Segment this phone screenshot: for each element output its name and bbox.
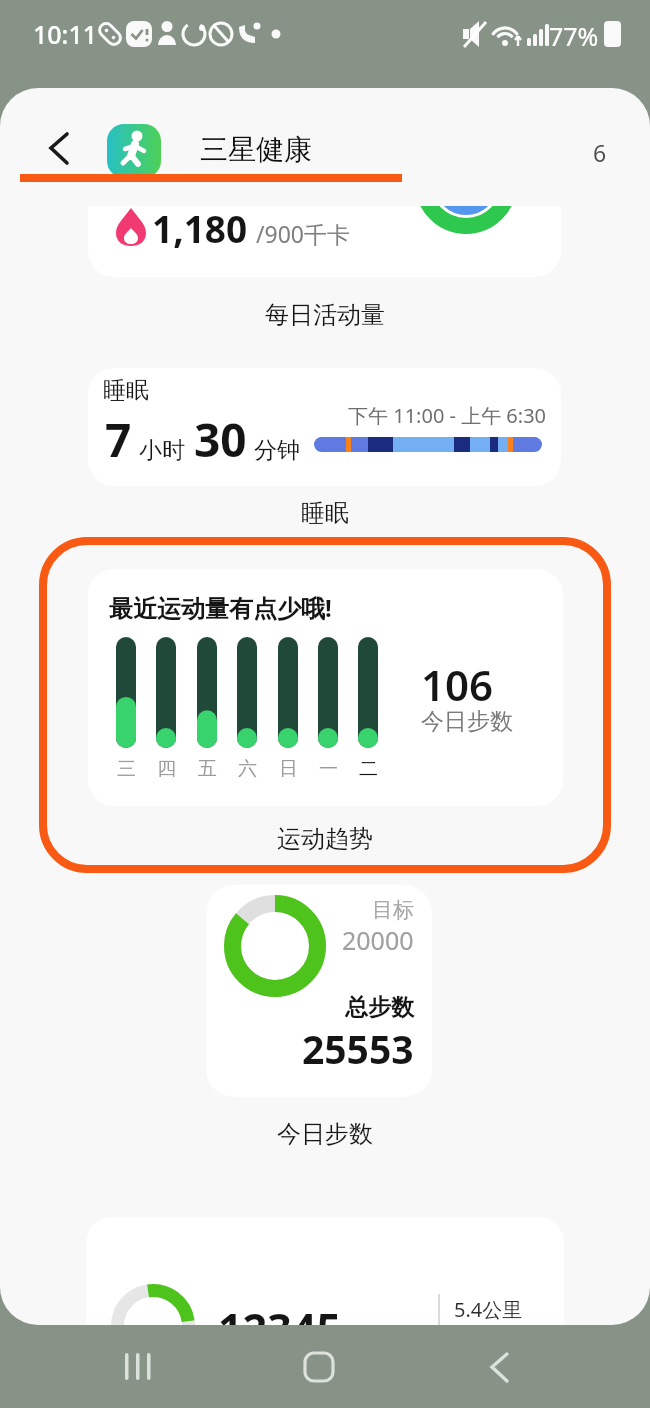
button[interactable]	[470, 1340, 530, 1396]
button[interactable]	[110, 1340, 170, 1396]
staticText: 三	[117, 757, 136, 781]
staticText: 六	[238, 757, 257, 781]
staticText: 6	[593, 137, 607, 168]
staticText: 小时	[139, 436, 185, 465]
staticText: 下午 11:00 - 上午 6:30	[348, 402, 547, 429]
button[interactable]	[34, 118, 84, 178]
staticText: 四	[157, 757, 176, 781]
staticText: 今日步数	[421, 707, 513, 736]
staticText: 77%	[549, 19, 599, 53]
staticText: 日	[279, 757, 298, 781]
staticText: 12345	[218, 1299, 341, 1325]
staticText: 5.4公里	[454, 1296, 523, 1323]
staticText: 睡眠	[301, 498, 349, 528]
staticText: 最近运动量有点少哦!	[109, 591, 332, 624]
staticText: 1,180	[152, 206, 248, 253]
staticText: 每日活动量	[265, 300, 385, 330]
staticText: 分钟	[254, 436, 300, 465]
staticText: 一	[319, 757, 338, 781]
button[interactable]: 12345	[86, 1217, 564, 1325]
button[interactable]: 睡眠	[88, 368, 561, 486]
staticText: 106	[421, 656, 494, 713]
staticText: 三星健康	[200, 132, 312, 167]
staticText: 7	[105, 408, 132, 471]
button[interactable]: 1,180	[88, 206, 561, 277]
staticText: 睡眠	[103, 376, 149, 405]
staticText: 今日步数	[277, 1119, 373, 1149]
staticText: 五	[198, 757, 217, 781]
staticText: 二	[359, 757, 378, 781]
staticText: 运动趋势	[277, 824, 373, 854]
staticText: 20000	[342, 923, 414, 957]
staticText: 目标	[372, 897, 414, 923]
staticText: /900千卡	[256, 218, 351, 249]
staticText: 10:11	[33, 17, 98, 51]
button[interactable]	[289, 1340, 349, 1396]
staticText: 25553	[302, 1022, 414, 1075]
button[interactable]: 最近运动量有点少哦!	[88, 569, 563, 806]
staticText: 总步数	[345, 993, 414, 1022]
staticText: 30	[194, 408, 247, 471]
button[interactable]: 目标	[206, 885, 432, 1097]
